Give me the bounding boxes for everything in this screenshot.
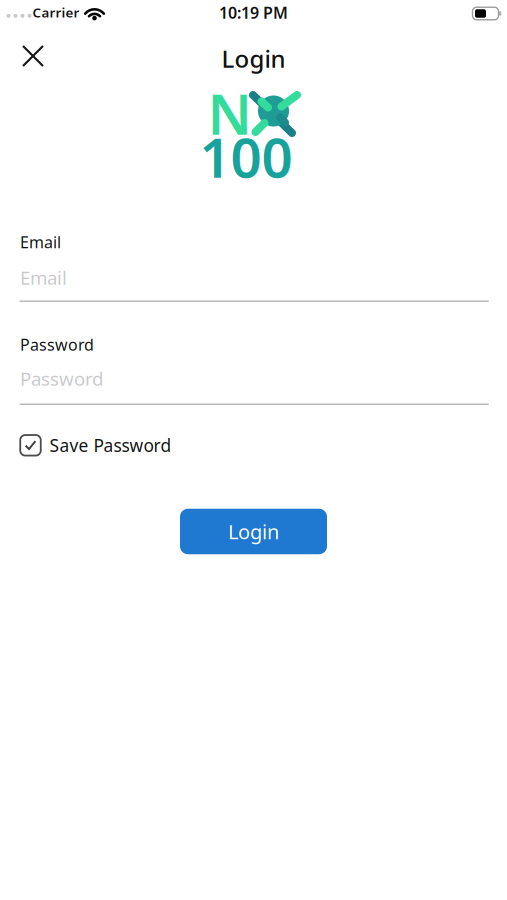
staticText: Save Password — [49, 434, 171, 457]
staticText: 100 — [199, 120, 292, 193]
staticText: Email — [20, 265, 67, 290]
staticText: Email — [20, 231, 61, 253]
staticText: Carrier — [32, 3, 79, 21]
staticText: Password — [20, 334, 94, 355]
button[interactable]: Login — [180, 509, 327, 554]
staticText: Login — [221, 43, 285, 74]
staticText: Password — [20, 366, 103, 391]
staticText: Login — [228, 518, 279, 545]
button[interactable]: Save Password — [20, 434, 171, 457]
staticText: 10:19 PM — [219, 2, 288, 23]
staticText: N — [207, 76, 251, 150]
button[interactable]: Close — [16, 39, 50, 73]
